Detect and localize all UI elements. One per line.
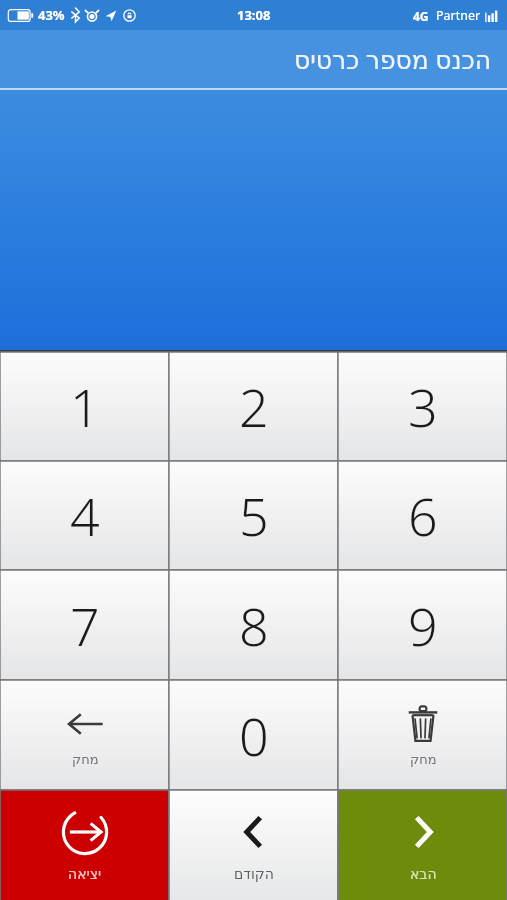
button[interactable]: Clear bbox=[338, 680, 507, 790]
button[interactable]: 7 bbox=[0, 570, 169, 680]
button[interactable]: 4 bbox=[0, 461, 169, 570]
staticText: 0 bbox=[239, 700, 269, 771]
staticText: 5 bbox=[239, 480, 269, 551]
staticText: 4 bbox=[70, 480, 100, 551]
button[interactable]: 8 bbox=[169, 570, 338, 680]
staticText: יציאה bbox=[68, 866, 102, 882]
button[interactable]: 0 bbox=[169, 680, 338, 790]
button[interactable]: 9 bbox=[338, 570, 507, 680]
staticText: 8 bbox=[239, 590, 269, 661]
staticText: 4G bbox=[413, 8, 429, 24]
staticText: הקודם bbox=[234, 866, 274, 882]
button[interactable]: 2 bbox=[169, 352, 338, 461]
button[interactable]: הבא bbox=[338, 790, 507, 900]
staticText: 1 bbox=[70, 371, 100, 442]
staticText: מחק bbox=[410, 752, 437, 767]
staticText: 3 bbox=[408, 371, 438, 442]
button[interactable]: הקודם bbox=[169, 790, 338, 900]
button[interactable]: 5 bbox=[169, 461, 338, 570]
staticText: 43% bbox=[38, 6, 65, 24]
staticText: 13:08 bbox=[237, 6, 271, 24]
staticText: 6 bbox=[408, 480, 438, 551]
staticText: הכנס מספר כרטיס bbox=[293, 42, 491, 76]
button[interactable]: 6 bbox=[338, 461, 507, 570]
button[interactable]: 3 bbox=[338, 352, 507, 461]
staticText: 2 bbox=[239, 371, 269, 442]
button[interactable]: 1 bbox=[0, 352, 169, 461]
staticText: מחק bbox=[72, 752, 99, 767]
staticText: Partner bbox=[436, 7, 481, 24]
button[interactable]: Backspace bbox=[0, 680, 169, 790]
staticText: הבא bbox=[410, 866, 437, 882]
staticText: 7 bbox=[70, 590, 100, 661]
button[interactable]: יציאה bbox=[0, 790, 169, 900]
staticText: 9 bbox=[408, 590, 438, 661]
